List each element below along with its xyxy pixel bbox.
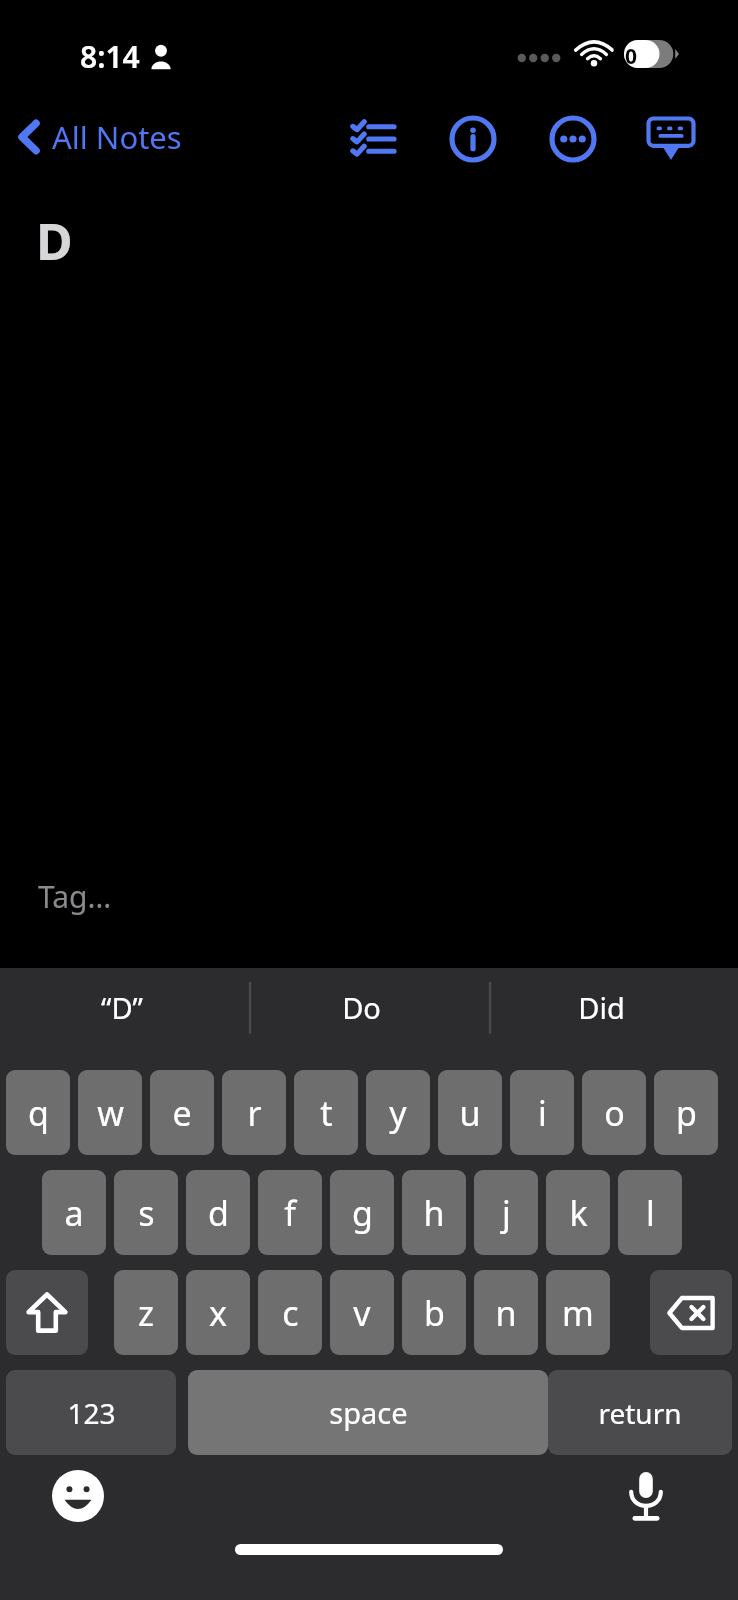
staticText: 70 [613, 42, 638, 71]
button[interactable]: t [294, 1070, 358, 1155]
button[interactable]: k [546, 1170, 610, 1255]
button[interactable]: n [474, 1270, 538, 1355]
button[interactable]: All Notes [10, 112, 190, 162]
staticText: v [353, 1290, 371, 1336]
button[interactable]: Did [501, 968, 701, 1046]
staticText: Do [342, 988, 381, 1027]
button[interactable]: 123 [6, 1370, 176, 1455]
staticText: i [538, 1090, 547, 1136]
button[interactable]: Hide keyboard [638, 108, 704, 170]
staticText: o [604, 1090, 625, 1136]
button[interactable]: u [438, 1070, 502, 1155]
staticText: u [459, 1090, 481, 1136]
button[interactable]: o [582, 1070, 646, 1155]
staticText: All Notes [52, 116, 182, 158]
staticText: h [423, 1190, 445, 1236]
button[interactable]: i [510, 1070, 574, 1155]
button[interactable]: q [6, 1070, 70, 1155]
button[interactable]: w [78, 1070, 142, 1155]
button[interactable]: f [258, 1170, 322, 1255]
staticText: m [562, 1290, 594, 1336]
staticText: n [495, 1290, 517, 1336]
button[interactable]: Dictate [610, 1460, 682, 1532]
staticText: s [138, 1190, 155, 1236]
staticText: a [64, 1190, 84, 1236]
staticText: e [172, 1090, 192, 1136]
staticText: 8:14 [80, 36, 140, 77]
staticText: g [352, 1190, 373, 1236]
staticText: f [284, 1190, 296, 1236]
button[interactable]: More [540, 108, 606, 170]
staticText: w [97, 1090, 124, 1136]
button[interactable]: g [330, 1170, 394, 1255]
staticText: Tag… [38, 876, 112, 917]
button[interactable]: space [188, 1370, 548, 1455]
button[interactable]: h [402, 1170, 466, 1255]
button[interactable]: y [366, 1070, 430, 1155]
staticText: d [208, 1190, 229, 1236]
staticText: z [138, 1290, 154, 1336]
button[interactable]: Info [440, 108, 506, 170]
staticText: r [247, 1090, 262, 1136]
button[interactable]: l [618, 1170, 682, 1255]
button[interactable]: s [114, 1170, 178, 1255]
staticText: D [36, 207, 73, 275]
button[interactable]: “D” [22, 968, 222, 1046]
button[interactable]: Checklist [340, 108, 406, 170]
staticText: j [502, 1190, 511, 1236]
staticText: 123 [67, 1394, 116, 1432]
button[interactable]: z [114, 1270, 178, 1355]
staticText: k [569, 1190, 588, 1236]
button[interactable]: Do [261, 968, 461, 1046]
staticText: x [209, 1290, 227, 1336]
button[interactable]: b [402, 1270, 466, 1355]
staticText: q [28, 1090, 49, 1136]
button[interactable]: j [474, 1170, 538, 1255]
staticText: c [282, 1290, 299, 1336]
staticText: b [424, 1290, 445, 1336]
staticText: space [329, 1393, 408, 1432]
button[interactable]: d [186, 1170, 250, 1255]
button[interactable]: m [546, 1270, 610, 1355]
button[interactable]: x [186, 1270, 250, 1355]
staticText: l [646, 1190, 655, 1236]
staticText: return [598, 1394, 682, 1432]
button[interactable]: Backspace [650, 1270, 732, 1355]
button[interactable]: Shift [6, 1270, 88, 1355]
staticText: Did [578, 988, 625, 1027]
button[interactable]: c [258, 1270, 322, 1355]
button[interactable]: return [548, 1370, 732, 1455]
button[interactable]: e [150, 1070, 214, 1155]
staticText: t [320, 1090, 333, 1136]
button[interactable]: Tag… [26, 870, 124, 923]
button[interactable]: a [42, 1170, 106, 1255]
button[interactable]: Emoji [42, 1460, 114, 1532]
staticText: “D” [101, 988, 143, 1027]
button[interactable]: v [330, 1270, 394, 1355]
staticText: y [389, 1090, 407, 1136]
staticText: p [676, 1090, 697, 1136]
button[interactable]: r [222, 1070, 286, 1155]
button[interactable]: p [654, 1070, 718, 1155]
